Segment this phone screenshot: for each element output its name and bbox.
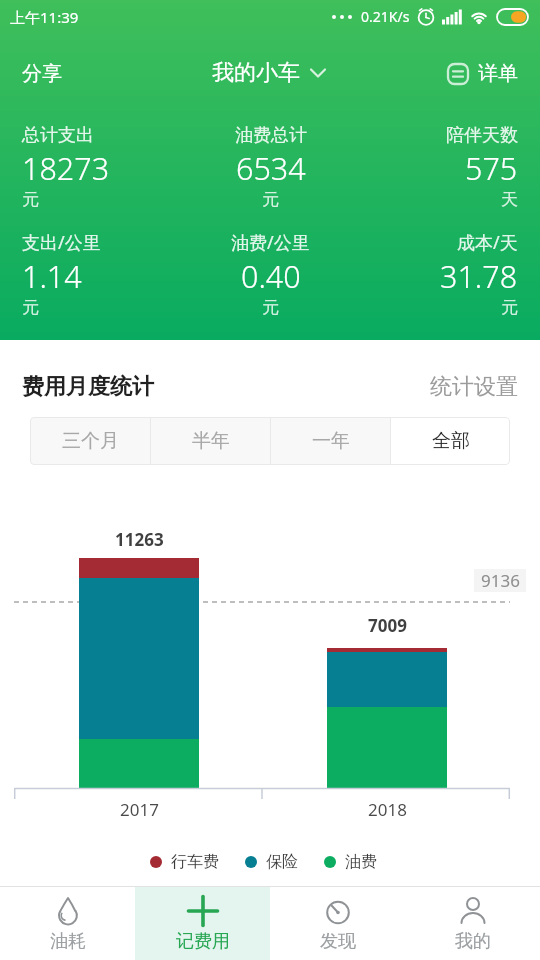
button[interactable]: 三个月 (30, 417, 150, 465)
button[interactable]: 统计设置 (430, 373, 518, 401)
staticText: 油费/公里 (231, 230, 310, 255)
staticText: 31.78 (440, 255, 518, 297)
staticText: 元 (22, 297, 39, 318)
staticText: 575 (465, 147, 518, 189)
staticText: 我的 (455, 930, 491, 953)
staticText: 元 (501, 297, 518, 318)
staticText: 油费总计 (235, 124, 307, 147)
button[interactable]: 发现 (270, 887, 405, 960)
staticText: 详单 (478, 61, 518, 86)
staticText: 2018 (368, 798, 407, 821)
button[interactable]: 一年 (271, 417, 390, 465)
button[interactable]: 记费用 (135, 887, 270, 960)
staticText: 6534 (236, 147, 306, 189)
staticText: 成本/天 (457, 230, 518, 255)
staticText: 11263 (115, 528, 164, 551)
staticText: 元 (262, 189, 279, 210)
staticText: 元 (262, 297, 279, 318)
staticText: 全部 (432, 429, 470, 453)
staticText: 18273 (22, 147, 110, 189)
staticText: 9136 (481, 569, 520, 592)
staticText: 1.14 (22, 255, 82, 297)
staticText: 支出/公里 (22, 230, 101, 255)
button[interactable]: 我的小车 (212, 59, 328, 87)
staticText: 0.40 (241, 255, 301, 297)
staticText: 7009 (368, 614, 407, 637)
button[interactable]: 油耗 (0, 887, 135, 960)
staticText: 上午11:39 (10, 7, 79, 27)
staticText: 行车费 (171, 852, 219, 872)
staticText: 总计支出 (22, 124, 94, 147)
button[interactable]: 半年 (151, 417, 270, 465)
button[interactable]: 详单 (446, 61, 518, 86)
staticText: 2017 (120, 798, 159, 821)
staticText: 发现 (320, 930, 356, 953)
staticText: 费用月度统计 (22, 373, 154, 401)
staticText: 一年 (312, 429, 350, 453)
staticText: 油费 (345, 852, 377, 872)
staticText: 油耗 (50, 930, 86, 953)
staticText: 天 (501, 189, 518, 210)
staticText: 半年 (192, 429, 230, 453)
staticText: 记费用 (176, 930, 230, 953)
staticText: 元 (22, 189, 39, 210)
staticText: 三个月 (62, 429, 119, 453)
staticText: 我的小车 (212, 59, 300, 87)
staticText: 0.21K/s (361, 7, 410, 26)
button[interactable]: 我的 (405, 887, 540, 960)
staticText: 陪伴天数 (446, 124, 518, 147)
staticText: 保险 (266, 852, 298, 872)
button[interactable]: 全部 (391, 417, 510, 465)
button[interactable]: 分享 (22, 61, 62, 86)
